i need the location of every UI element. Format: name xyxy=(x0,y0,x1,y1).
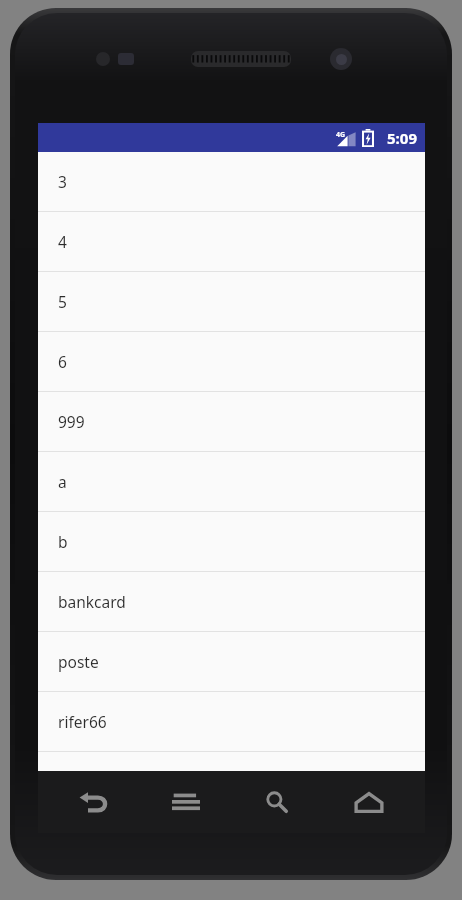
button[interactable]: b xyxy=(38,512,425,572)
staticText: rifer66 xyxy=(58,711,107,732)
staticText: 5 xyxy=(58,291,67,312)
button[interactable]: 999 xyxy=(38,392,425,452)
button[interactable]: bankcard xyxy=(38,572,425,632)
staticText: 3 xyxy=(58,171,67,192)
staticText: a xyxy=(58,471,67,492)
button[interactable]: poste xyxy=(38,632,425,692)
button[interactable]: Home xyxy=(333,774,405,830)
staticText: 999 xyxy=(58,411,85,432)
staticText: 4G xyxy=(336,130,346,140)
button[interactable]: 3 xyxy=(38,152,425,212)
staticText: poste xyxy=(58,651,99,672)
button[interactable]: Menu xyxy=(150,774,222,830)
staticText: bankcard xyxy=(58,591,126,612)
button[interactable]: rifer66 xyxy=(38,692,425,752)
staticText: 6 xyxy=(58,351,67,372)
staticText: 5:09 xyxy=(387,128,417,148)
staticText: 4 xyxy=(58,231,67,252)
staticText: b xyxy=(58,531,68,552)
button[interactable]: Back xyxy=(58,774,130,830)
button[interactable]: 5 xyxy=(38,272,425,332)
button[interactable]: 6 xyxy=(38,332,425,392)
button[interactable]: Search xyxy=(241,774,313,830)
button[interactable]: a xyxy=(38,452,425,512)
button[interactable]: 4 xyxy=(38,212,425,272)
